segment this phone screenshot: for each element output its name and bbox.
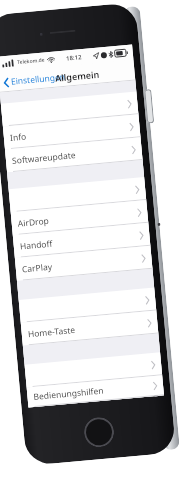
button[interactable]: Einstellungen: [1, 69, 68, 90]
staticText: Softwareupdate: [12, 149, 76, 167]
button[interactable]: Einstellung: [9, 177, 146, 212]
button[interactable]: Telekom.de: [0, 45, 164, 407]
button[interactable]: Handoff: [13, 223, 150, 258]
button[interactable]: Einstellung: [1, 91, 138, 127]
button[interactable]: Bedienungshilfen: [27, 375, 164, 407]
button[interactable]: Home: [83, 416, 115, 448]
staticText: 18:12: [66, 53, 82, 63]
other: Power button: [144, 89, 154, 123]
button[interactable]: Info: [3, 114, 140, 149]
button[interactable]: Einstellung: [19, 288, 156, 323]
staticText: Allgemein: [54, 68, 100, 84]
button[interactable]: AirDrop: [11, 200, 148, 235]
staticText: Bedienungshilfen: [33, 385, 105, 403]
staticText: Info: [9, 130, 27, 144]
staticText: Telekom.de: [17, 57, 45, 66]
button[interactable]: Home-Taste: [21, 310, 158, 346]
button[interactable]: Einstellung: [25, 352, 162, 387]
staticText: Einstellungen: [10, 71, 66, 88]
staticText: Home-Taste: [27, 324, 76, 340]
button[interactable]: Softwareupdate: [5, 137, 142, 172]
staticText: AirDrop: [17, 215, 50, 230]
staticText: CarPlay: [21, 261, 53, 275]
staticText: Handoff: [19, 238, 53, 252]
button[interactable]: CarPlay: [15, 246, 152, 281]
